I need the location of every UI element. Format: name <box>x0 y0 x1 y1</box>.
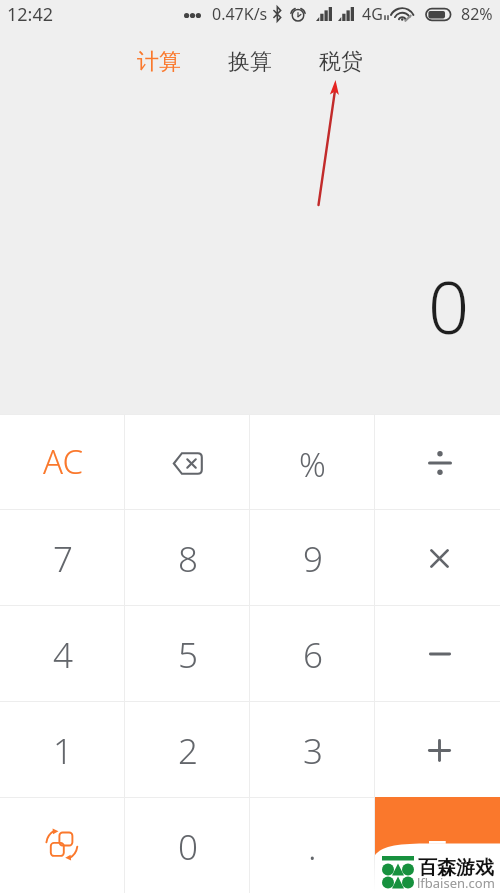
button[interactable]: 换算 <box>222 40 278 84</box>
button[interactable]: 4 <box>0 605 125 701</box>
staticText: 82% <box>461 3 493 25</box>
button[interactable]: Minus <box>375 605 500 701</box>
button[interactable]: 税贷 <box>313 40 369 84</box>
button[interactable]: 8 <box>125 509 250 605</box>
button[interactable]: 3 <box>250 701 375 797</box>
staticText: AC <box>43 439 83 484</box>
staticText: 税贷 <box>319 48 363 76</box>
button[interactable]: 计算 <box>131 40 187 84</box>
staticText: 3 <box>303 727 323 775</box>
button[interactable]: 6 <box>250 605 375 701</box>
staticText: 8 <box>178 535 198 583</box>
staticText: 12:42 <box>7 2 54 27</box>
button[interactable]: 1 <box>0 701 125 797</box>
button[interactable]: . <box>250 797 375 893</box>
button[interactable]: Divide <box>375 414 500 509</box>
staticText: 0.47K/s <box>212 3 268 25</box>
staticText: 6 <box>303 631 323 679</box>
button[interactable]: 9 <box>250 509 375 605</box>
staticText: 7 <box>53 535 73 583</box>
button[interactable]: 7 <box>0 509 125 605</box>
staticText: 0 <box>178 823 198 871</box>
staticText: 4 <box>53 631 73 679</box>
staticText: . <box>308 823 317 871</box>
staticText: = <box>427 821 448 870</box>
staticText: lfbaisen.com <box>417 874 495 892</box>
button[interactable]: Backspace <box>125 414 250 509</box>
staticText: 计算 <box>137 48 181 76</box>
button[interactable]: Multiply <box>375 509 500 605</box>
button[interactable]: 5 <box>125 605 250 701</box>
staticText: 2 <box>178 727 198 775</box>
staticText: 百森游戏 <box>418 856 494 880</box>
staticText: % <box>299 442 326 487</box>
staticText: 换算 <box>228 48 272 76</box>
button[interactable]: % <box>250 414 375 509</box>
staticText: 9 <box>303 535 323 583</box>
button[interactable]: 0 <box>125 797 250 893</box>
staticText: 1 <box>53 727 73 775</box>
button[interactable]: AC <box>0 414 125 509</box>
button[interactable]: Plus <box>375 701 500 797</box>
button[interactable]: Equals <box>375 797 500 893</box>
staticText: 0 <box>428 257 470 355</box>
button[interactable]: 2 <box>125 701 250 797</box>
button[interactable]: Convert units <box>0 797 125 893</box>
staticText: 4G <box>362 3 383 25</box>
staticText: 5 <box>178 631 198 679</box>
